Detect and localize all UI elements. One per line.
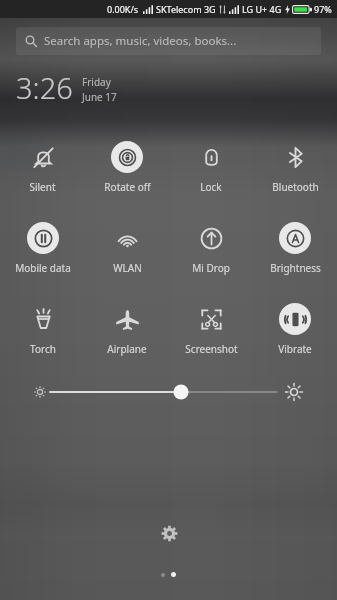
button[interactable]: Mobile data [0, 222, 85, 275]
staticText: Vibrate [278, 342, 312, 356]
staticText: Airplane [107, 342, 147, 356]
staticText: Mobile data [15, 261, 71, 275]
staticText: Silent [29, 180, 56, 194]
staticText: Bluetooth [272, 180, 319, 194]
staticText: SKTelecom 3G [156, 3, 216, 15]
button[interactable]: Mi Drop [169, 222, 253, 275]
staticText: 3:26 [16, 68, 73, 107]
button[interactable]: Lock [169, 141, 253, 194]
button[interactable] [171, 572, 176, 577]
staticText: WLAN [113, 261, 142, 275]
button[interactable]: Airplane [85, 303, 169, 356]
button[interactable]: Vibrate [253, 303, 337, 356]
staticText: Rotate off [104, 180, 151, 194]
staticText: Torch [30, 342, 56, 356]
staticText: Search apps, music, videos, books... [44, 33, 237, 49]
staticText: LG U+ 4G [242, 3, 282, 15]
staticText: Mi Drop [192, 261, 230, 275]
button[interactable] [161, 573, 165, 577]
button[interactable]: Brightness [0, 372, 337, 412]
staticText: 0.00K/s [107, 3, 139, 15]
staticText: 97% [314, 3, 332, 15]
button[interactable]: Bluetooth [253, 141, 337, 194]
button[interactable]: WLAN [85, 222, 169, 275]
staticText: Screenshot [185, 342, 238, 356]
staticText: Brightness [270, 261, 321, 275]
button[interactable]: Search apps, music, videos, books... [16, 27, 321, 55]
button[interactable]: Brightness [253, 222, 337, 275]
button[interactable]: Torch [0, 303, 85, 356]
button[interactable]: Settings [152, 516, 186, 550]
staticText: Lock [200, 180, 222, 194]
staticText: June 17 [82, 90, 117, 104]
button[interactable]: Silent [0, 141, 85, 194]
staticText: Friday [82, 75, 111, 89]
button[interactable]: Screenshot [169, 303, 253, 356]
button[interactable]: Rotate off [85, 141, 169, 194]
